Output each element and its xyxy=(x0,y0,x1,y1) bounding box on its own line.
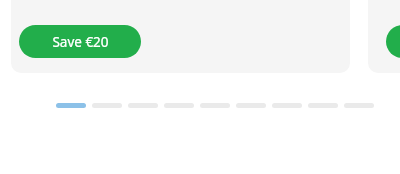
button[interactable]: Page 1 xyxy=(56,103,86,108)
button[interactable]: Save €20 xyxy=(368,0,400,73)
button[interactable]: Save €20 xyxy=(19,25,141,58)
button[interactable]: Save €20 xyxy=(386,25,400,58)
button[interactable]: Save €20 xyxy=(11,0,350,73)
staticText: Save €20 xyxy=(52,33,109,51)
